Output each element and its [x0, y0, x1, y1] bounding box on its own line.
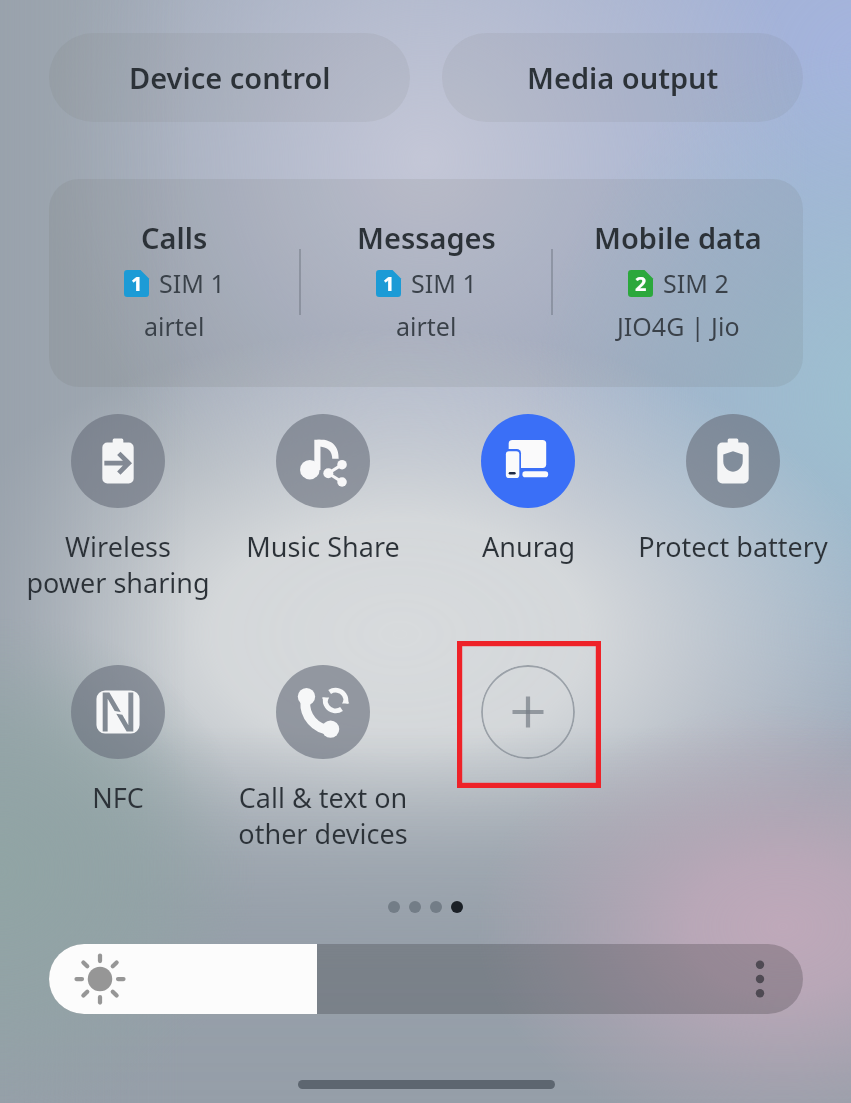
staticText: SIM 1	[159, 266, 225, 300]
staticText: Call & text on other devices	[238, 779, 408, 852]
button[interactable]: Wireless power sharing	[16, 414, 220, 601]
staticText: 2	[635, 270, 647, 297]
staticText: airtel	[144, 309, 205, 343]
staticText: Music Share	[246, 528, 400, 565]
button[interactable]: Calls	[49, 179, 299, 387]
button[interactable]: Brightness options	[49, 944, 803, 1014]
button[interactable]: Call & text on other devices	[221, 665, 425, 852]
staticText: JIO4G | Jio	[617, 309, 740, 343]
button[interactable]: Protect battery	[631, 414, 835, 565]
staticText: 1	[131, 270, 143, 297]
button[interactable]: Messages	[301, 179, 551, 387]
staticText: NFC	[92, 779, 144, 816]
button[interactable]: Anurag	[426, 414, 630, 565]
button[interactable]: Add tile	[481, 665, 575, 759]
staticText: Calls	[141, 218, 208, 257]
other: Brightness options	[755, 957, 765, 1001]
staticText: Wireless power sharing	[26, 528, 210, 601]
staticText: Mobile data	[594, 218, 762, 257]
button[interactable]: NFC	[16, 665, 220, 816]
staticText: airtel	[396, 309, 457, 343]
staticText: Messages	[357, 218, 496, 257]
staticText: Device control	[129, 58, 331, 97]
staticText: Anurag	[482, 528, 575, 565]
staticText: Media output	[527, 58, 719, 97]
staticText: Protect battery	[638, 528, 828, 565]
button[interactable]: Media output	[442, 33, 803, 122]
staticText: SIM 2	[663, 266, 729, 300]
button[interactable]: Mobile data	[553, 179, 803, 387]
button[interactable]: Music Share	[221, 414, 425, 565]
staticText: SIM 1	[411, 266, 477, 300]
staticText: 1	[383, 270, 395, 297]
button[interactable]: Device control	[49, 33, 410, 122]
